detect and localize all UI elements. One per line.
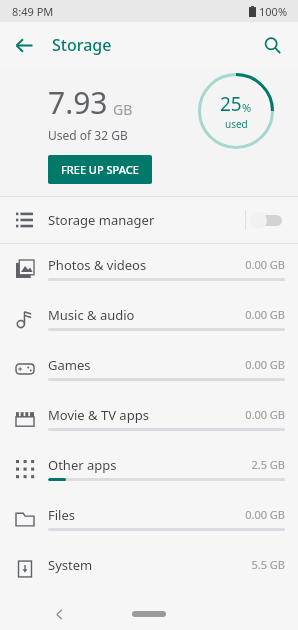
staticText: 8:49 PM — [12, 4, 54, 19]
staticText: Files — [48, 506, 76, 524]
staticText: used — [225, 117, 248, 131]
staticText: 0.00 GB — [245, 507, 285, 522]
staticText: FREE UP SPACE — [61, 162, 139, 177]
staticText: 2.5 GB — [251, 457, 285, 472]
staticText: 0.00 GB — [245, 357, 285, 372]
staticText: Used of 32 GB — [48, 127, 128, 143]
staticText: GB — [113, 100, 133, 119]
staticText: System — [48, 556, 93, 574]
button[interactable]: Storage manager — [0, 197, 298, 243]
staticText: Music & audio — [48, 306, 135, 324]
button[interactable]: Other apps — [0, 444, 298, 494]
button[interactable]: Photos & videos — [0, 244, 298, 294]
button[interactable]: System — [0, 544, 298, 594]
staticText: Other apps — [48, 456, 117, 474]
button[interactable]: Music & audio — [0, 294, 298, 344]
staticText: Games — [48, 356, 91, 374]
staticText: Movie & TV apps — [48, 406, 149, 424]
button[interactable]: Back — [46, 601, 72, 627]
button[interactable]: Files — [0, 494, 298, 544]
staticText: 0.00 GB — [245, 407, 285, 422]
staticText: % — [242, 100, 252, 115]
staticText: Photos & videos — [48, 256, 147, 274]
staticText: 0.00 GB — [245, 257, 285, 272]
staticText: 0.00 GB — [245, 307, 285, 322]
button[interactable]: Movie & TV apps — [0, 394, 298, 444]
staticText: Storage — [52, 34, 112, 56]
staticText: 7.93 — [48, 82, 108, 123]
button[interactable]: Games — [0, 344, 298, 394]
button[interactable]: Search — [254, 27, 290, 63]
button[interactable]: Back — [6, 27, 42, 63]
staticText: 5.5 GB — [251, 557, 285, 572]
staticText: Storage manager — [48, 211, 155, 229]
staticText: 100% — [259, 4, 288, 19]
button[interactable]: FREE UP SPACE — [48, 155, 152, 184]
staticText: 25 — [220, 91, 242, 117]
button[interactable]: Home — [132, 611, 166, 617]
button[interactable]: Storage manager toggle — [250, 208, 286, 232]
